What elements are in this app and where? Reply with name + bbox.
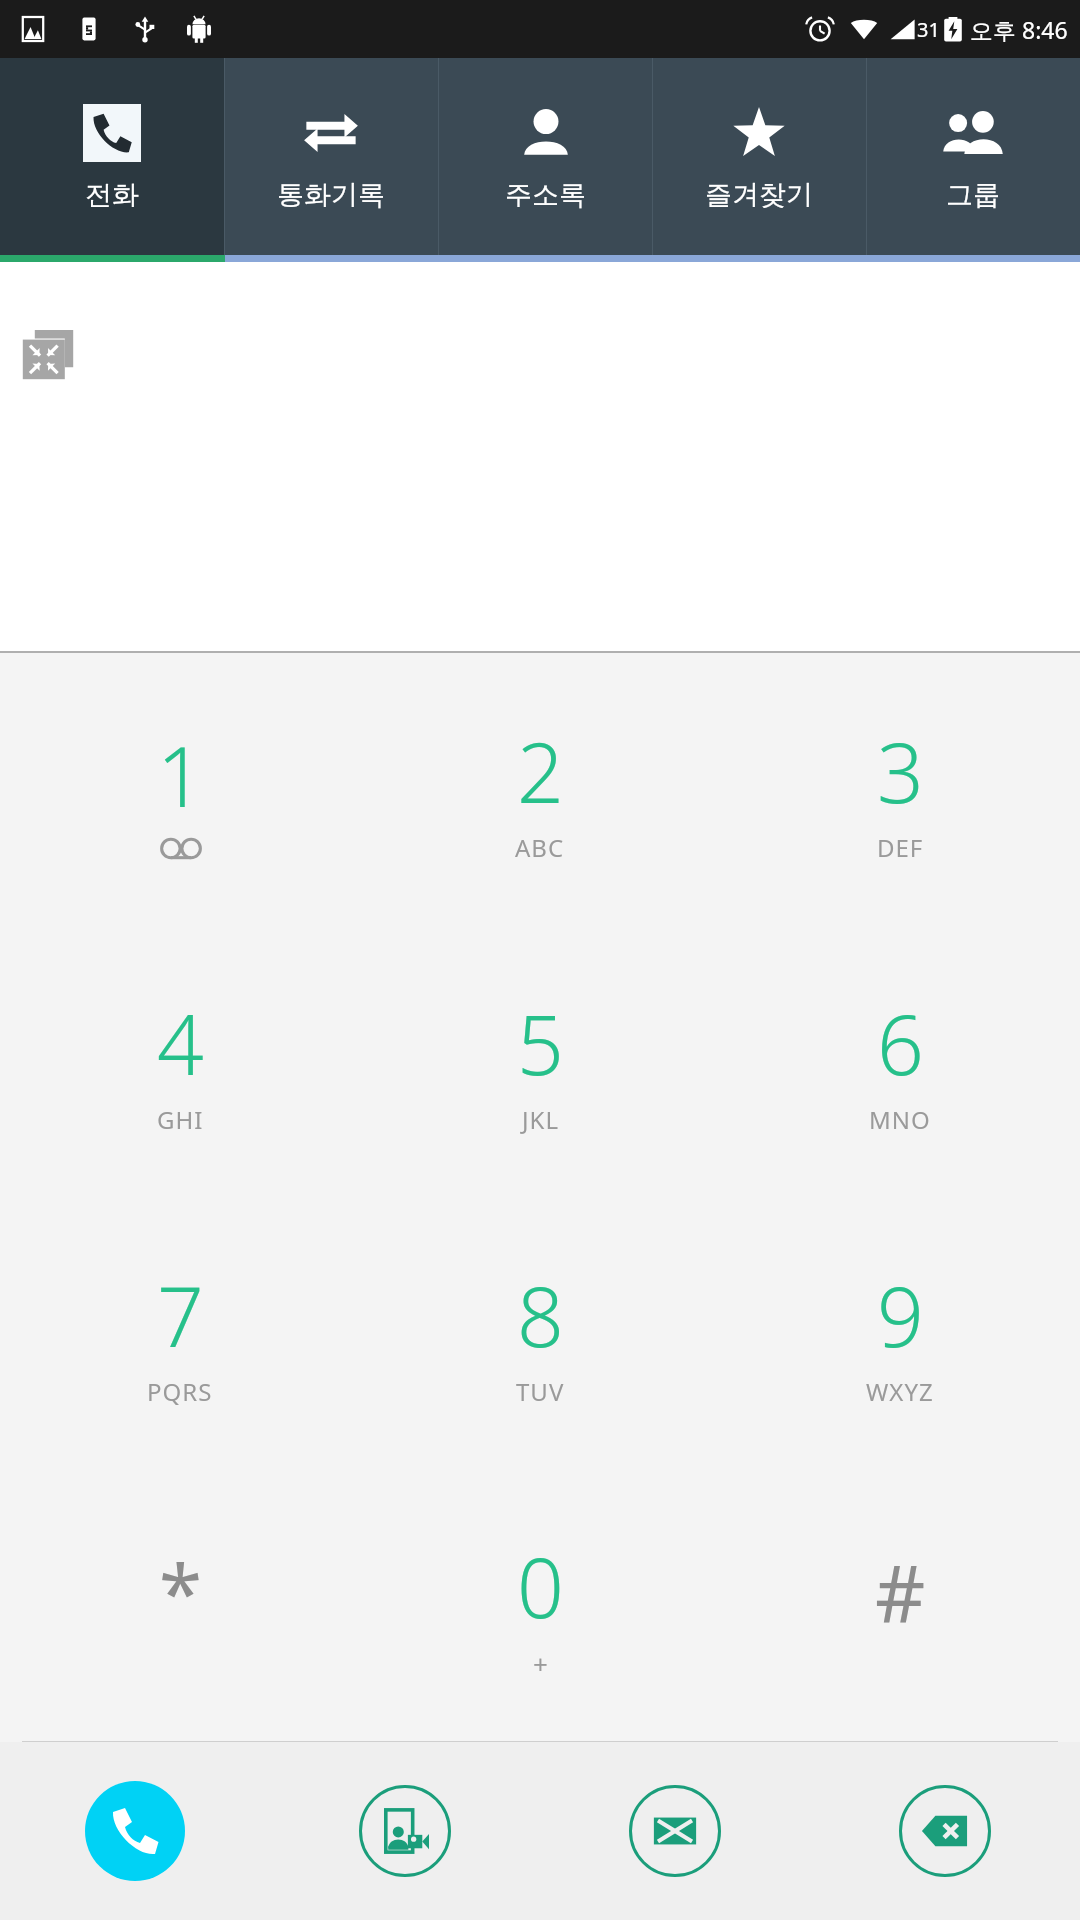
staticText: 그룹 xyxy=(946,178,1000,212)
button[interactable]: Backspace xyxy=(899,1785,991,1877)
button[interactable]: 5 xyxy=(360,925,720,1197)
button[interactable]: * xyxy=(0,1469,360,1741)
staticText: 통화기록 xyxy=(277,178,385,212)
staticText: # xyxy=(875,1539,926,1645)
button[interactable]: 4 xyxy=(0,925,360,1197)
staticText: 0 xyxy=(517,1530,564,1642)
button[interactable]: 0 xyxy=(360,1469,720,1741)
staticText: 5 xyxy=(517,987,564,1099)
button[interactable]: 7 xyxy=(0,1197,360,1469)
staticText: 즐겨찾기 xyxy=(705,178,813,212)
staticText: 6 xyxy=(877,987,924,1099)
staticText: + xyxy=(533,1646,549,1681)
staticText: 오후 8:46 xyxy=(970,14,1068,45)
staticText: ABC xyxy=(515,831,565,864)
button[interactable]: Call xyxy=(85,1781,185,1881)
staticText: 3 xyxy=(877,715,924,827)
button[interactable]: 즐겨찾기 xyxy=(652,58,866,255)
button[interactable]: Message xyxy=(629,1785,721,1877)
staticText: 4 xyxy=(157,987,204,1099)
staticText: 주소록 xyxy=(505,178,586,212)
button[interactable]: 2 xyxy=(360,653,720,925)
staticText: GHI xyxy=(157,1103,204,1136)
button[interactable]: 6 xyxy=(720,925,1080,1197)
button[interactable]: 1 xyxy=(0,653,360,925)
button[interactable]: 전화 xyxy=(0,58,224,255)
staticText: 1 xyxy=(157,719,204,831)
button[interactable]: Collapse dialpad xyxy=(18,324,78,384)
button[interactable]: 그룹 xyxy=(866,58,1080,255)
staticText: 7 xyxy=(157,1259,204,1371)
button[interactable]: 통화기록 xyxy=(224,58,438,255)
staticText: DEF xyxy=(877,831,924,864)
staticText: PQRS xyxy=(147,1375,213,1408)
button[interactable]: 주소록 xyxy=(438,58,652,255)
staticText: 전화 xyxy=(85,178,139,212)
staticText: WXYZ xyxy=(866,1375,934,1408)
button[interactable]: 9 xyxy=(720,1197,1080,1469)
staticText: JKL xyxy=(522,1103,559,1136)
staticText: 2 xyxy=(517,715,564,827)
staticText: MNO xyxy=(869,1103,931,1136)
staticText: 9 xyxy=(877,1259,924,1371)
staticText: TUV xyxy=(516,1375,565,1408)
staticText: * xyxy=(159,1539,202,1645)
button[interactable]: 8 xyxy=(360,1197,720,1469)
button[interactable]: 3 xyxy=(720,653,1080,925)
button[interactable]: # xyxy=(720,1469,1080,1741)
staticText: 31 xyxy=(917,16,940,43)
staticText: 8 xyxy=(517,1259,564,1371)
button[interactable]: Video call xyxy=(359,1785,451,1877)
